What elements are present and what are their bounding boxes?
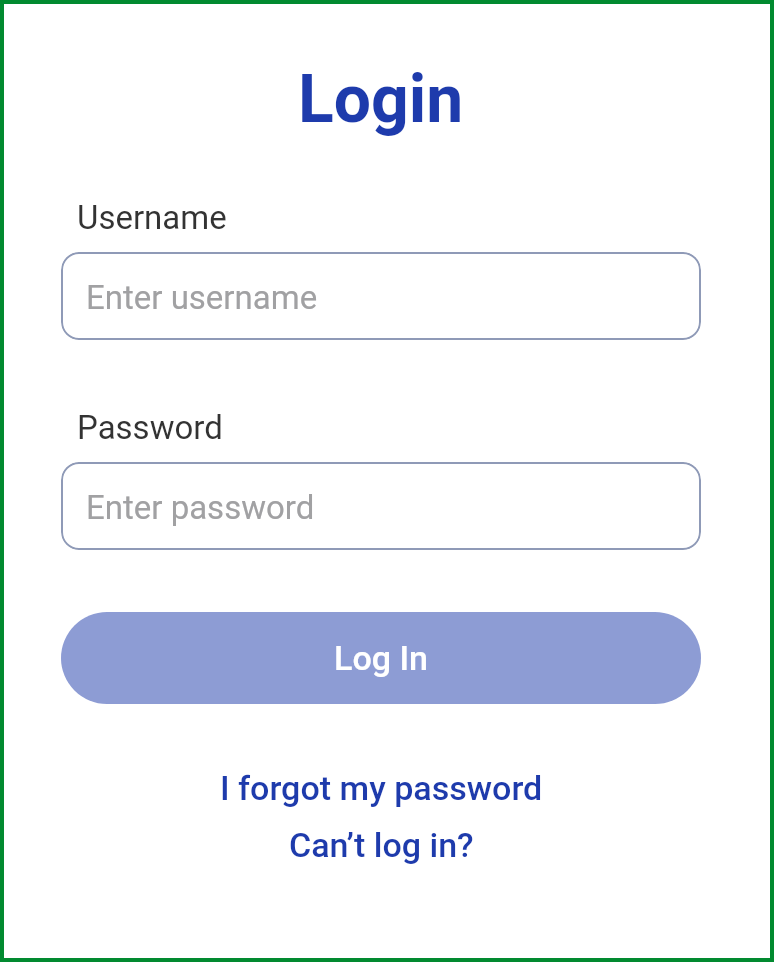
- button[interactable]: I forgot my password: [220, 768, 543, 808]
- staticText: Log In: [334, 638, 429, 678]
- button[interactable]: Enter username: [61, 252, 701, 340]
- staticText: Login: [298, 61, 464, 138]
- staticText: Username: [77, 198, 227, 237]
- staticText: Enter password: [86, 488, 315, 527]
- button[interactable]: Can’t log in?: [289, 825, 474, 865]
- staticText: Enter username: [86, 278, 318, 317]
- button[interactable]: Log In: [61, 612, 701, 704]
- button[interactable]: Enter password: [61, 462, 701, 550]
- staticText: Password: [77, 408, 223, 447]
